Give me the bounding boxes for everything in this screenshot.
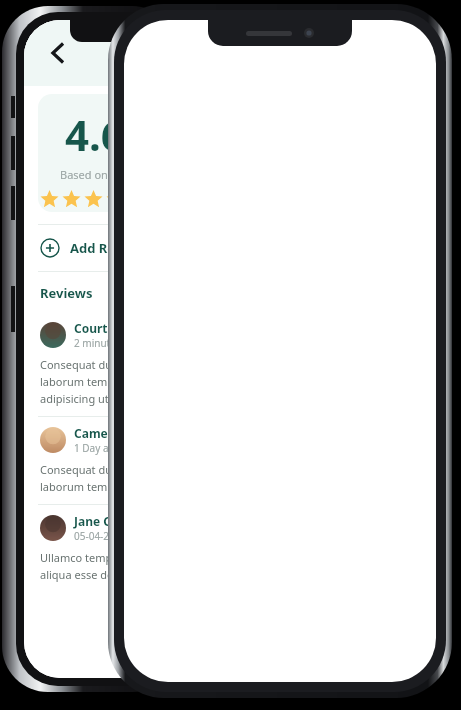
staticText: Reviews — [40, 284, 93, 302]
staticText: laborum tempor — [40, 479, 126, 494]
button[interactable]: Jane Cooper — [24, 505, 166, 592]
staticText: 4.6 — [65, 106, 125, 163]
staticText: Cameron W. — [74, 425, 146, 441]
button[interactable]: Cameron W. — [24, 417, 166, 504]
staticText: Ullamco tempor — [40, 550, 124, 565]
staticText: Consequat duis — [40, 357, 121, 372]
staticText: laborum tempor — [40, 374, 126, 389]
staticText: adipisicing ut — [40, 391, 109, 406]
button[interactable]: Courtney Henry — [24, 312, 166, 416]
button[interactable]: Add Review — [24, 225, 166, 271]
staticText: 05-04-2021 — [74, 529, 127, 543]
staticText: 2 minutes ago — [74, 336, 142, 350]
staticText: aliqua esse do — [40, 567, 114, 582]
staticText: Add Review — [70, 239, 145, 257]
staticText: Consequat duis — [40, 462, 121, 477]
staticText: 1 Day ago — [74, 441, 121, 455]
button[interactable]: Back — [42, 36, 76, 70]
staticText: Jane Cooper — [74, 513, 147, 529]
staticText: Based on 120 — [60, 167, 130, 182]
staticText: Courtney Henry — [74, 320, 150, 336]
